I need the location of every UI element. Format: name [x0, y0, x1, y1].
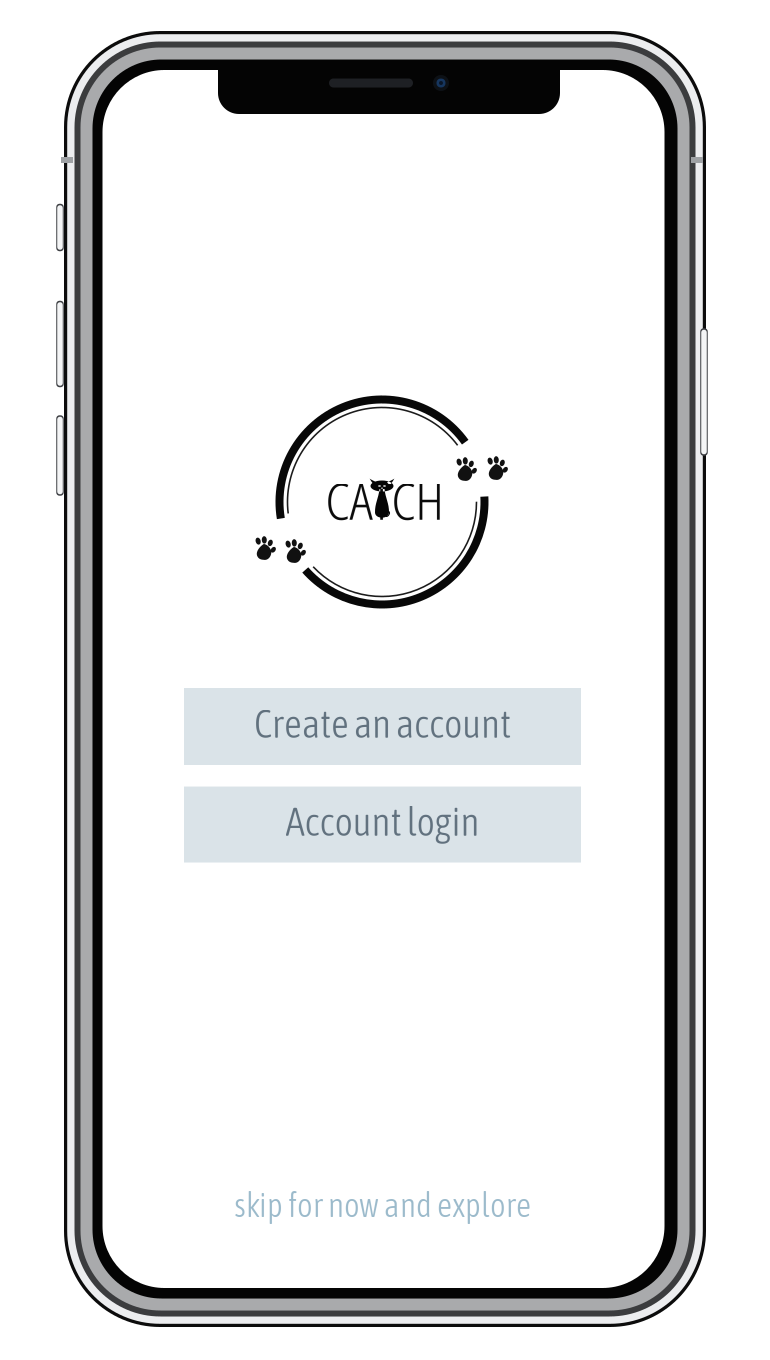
- staticText: Create an account: [254, 701, 511, 746]
- button[interactable]: skip for now and explore: [167, 1181, 597, 1229]
- button[interactable]: Account login: [184, 786, 581, 862]
- button[interactable]: Create an account: [184, 688, 581, 765]
- staticText: skip for now and explore: [234, 1186, 531, 1224]
- staticText: Account login: [285, 799, 479, 844]
- staticText: CATCH: [325, 467, 443, 534]
